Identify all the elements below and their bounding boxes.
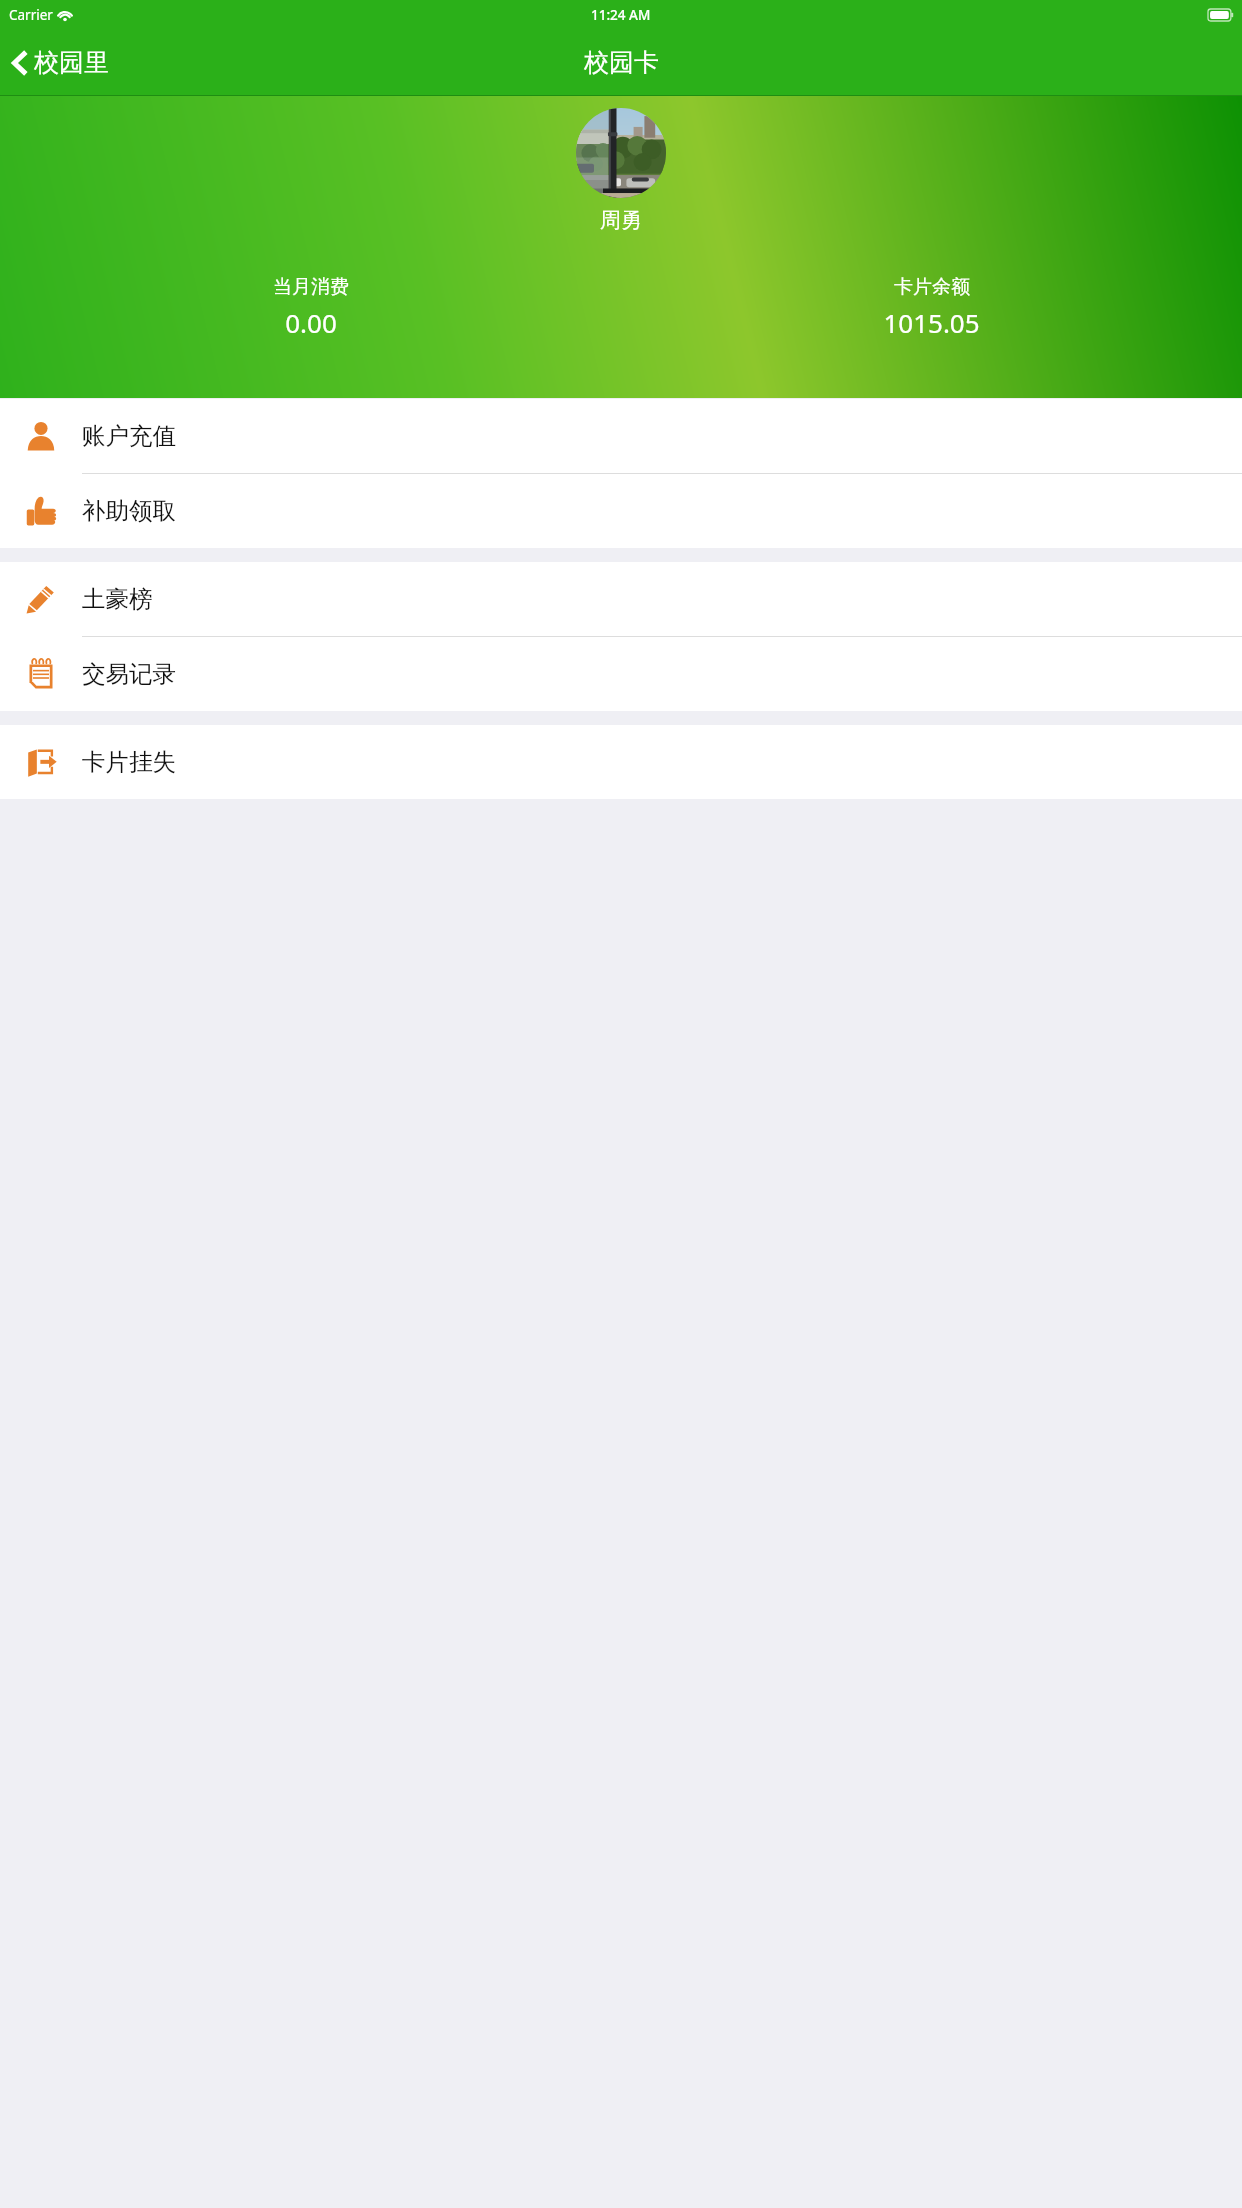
staticText: 当月消费 bbox=[273, 275, 349, 299]
button[interactable]: 土豪榜 bbox=[0, 562, 1242, 636]
staticText: 卡片挂失 bbox=[82, 747, 176, 777]
staticText: 11:24 AM bbox=[591, 6, 651, 24]
staticText: 校园里 bbox=[34, 47, 109, 78]
staticText: 交易记录 bbox=[82, 659, 176, 689]
button[interactable]: 账户充值 bbox=[0, 399, 1242, 473]
staticText: Carrier bbox=[9, 6, 53, 24]
button[interactable]: 交易记录 bbox=[0, 637, 1242, 711]
staticText: 0.00 bbox=[285, 305, 337, 340]
button[interactable]: Back bbox=[0, 30, 123, 95]
staticText: 周勇 bbox=[600, 207, 642, 233]
staticText: 账户充值 bbox=[82, 421, 176, 451]
button[interactable]: 补助领取 bbox=[0, 474, 1242, 548]
staticText: 1015.05 bbox=[883, 305, 980, 340]
staticText: 补助领取 bbox=[82, 496, 176, 526]
other: Back bbox=[13, 51, 27, 75]
button[interactable]: 卡片挂失 bbox=[0, 725, 1242, 799]
staticText: 卡片余额 bbox=[894, 275, 970, 299]
staticText: 校园卡 bbox=[584, 47, 659, 78]
staticText: 土豪榜 bbox=[82, 584, 153, 614]
button[interactable]: Avatar bbox=[576, 108, 666, 198]
